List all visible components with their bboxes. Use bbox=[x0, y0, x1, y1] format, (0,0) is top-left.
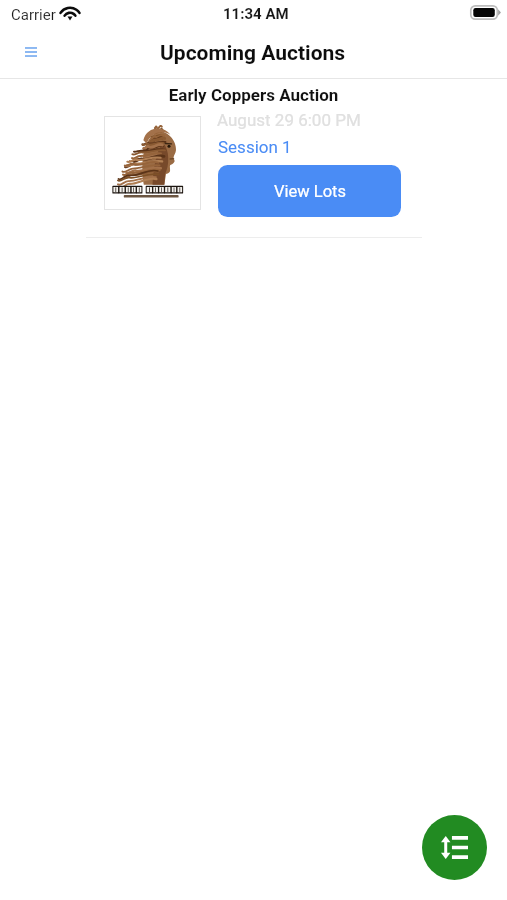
staticText: 11:34 AM bbox=[223, 5, 289, 23]
button[interactable]: Session 1 bbox=[218, 137, 296, 158]
button[interactable]: View Lots bbox=[218, 165, 401, 217]
staticText: August 29 6:00 PM bbox=[217, 110, 361, 130]
staticText: Carrier bbox=[11, 6, 56, 24]
button[interactable]: Open navigation menu bbox=[13, 34, 49, 70]
button[interactable]: Sort auctions bbox=[422, 815, 487, 880]
staticText: Upcoming Auctions bbox=[160, 41, 346, 66]
staticText: View Lots bbox=[274, 182, 346, 201]
staticText: Session 1 bbox=[218, 137, 292, 157]
staticText: Early Coppers Auction bbox=[0, 85, 507, 105]
